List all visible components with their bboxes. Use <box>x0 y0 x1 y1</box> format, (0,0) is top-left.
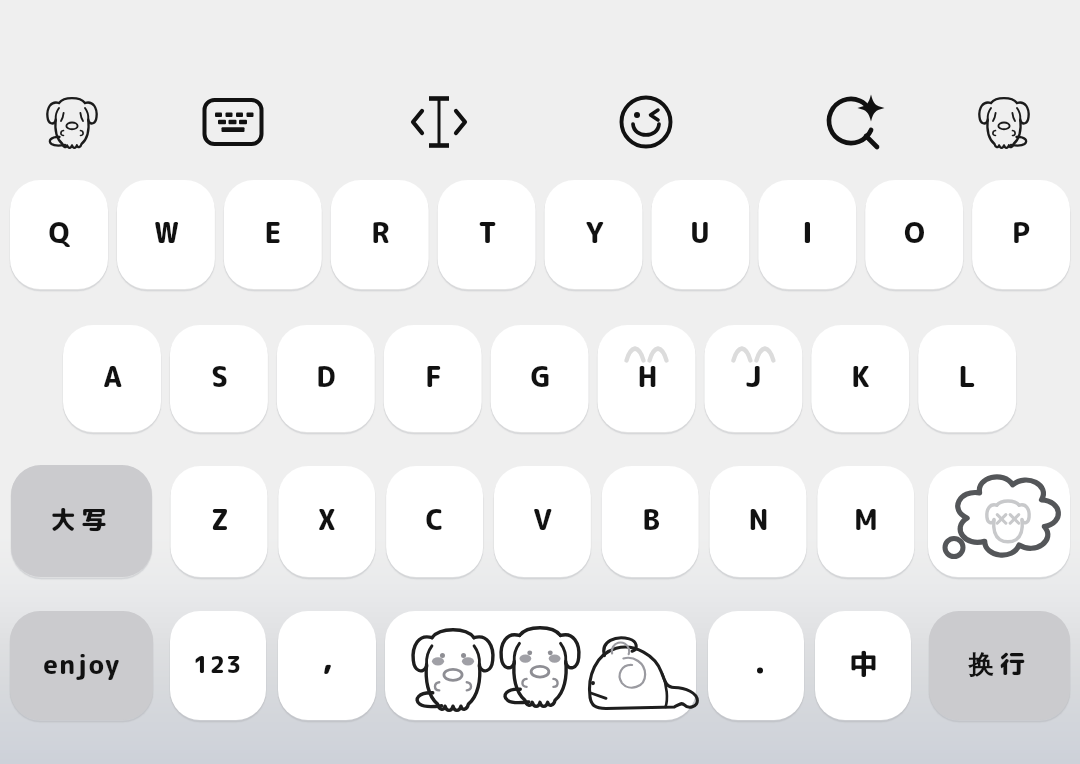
button[interactable]: S <box>170 325 268 432</box>
staticText: B <box>642 500 660 539</box>
button[interactable]: L <box>918 325 1016 432</box>
button[interactable]: Q <box>10 180 108 289</box>
button[interactable]: C <box>386 466 483 577</box>
staticText: 大写 <box>50 502 113 537</box>
button[interactable]: Emoji <box>610 86 682 158</box>
button[interactable]: F <box>384 325 482 432</box>
button[interactable]: Backspace <box>928 466 1070 577</box>
button[interactable]: Stickers <box>37 87 109 159</box>
staticText: T <box>478 213 497 252</box>
button[interactable]: H <box>598 325 696 432</box>
button[interactable]: K <box>811 325 909 432</box>
button[interactable]: enjoy <box>10 611 153 720</box>
staticText: Z <box>211 500 229 539</box>
staticText: C <box>425 500 444 539</box>
button[interactable]: J <box>704 325 802 432</box>
button[interactable]: E <box>224 180 322 289</box>
staticText: J <box>745 357 762 396</box>
staticText: 中 <box>849 644 878 683</box>
button[interactable]: U <box>651 180 749 289</box>
staticText: N <box>748 500 769 539</box>
button[interactable]: X <box>278 466 375 577</box>
staticText: Q <box>48 213 70 252</box>
button[interactable]: A <box>63 325 161 432</box>
button[interactable]: O <box>865 180 963 289</box>
button[interactable]: Z <box>171 466 268 577</box>
button[interactable]: Move cursor <box>403 86 475 158</box>
staticText: V <box>533 500 552 539</box>
button[interactable]: B <box>602 466 699 577</box>
staticText: L <box>958 357 976 396</box>
staticText: I <box>802 213 813 252</box>
staticText: P <box>1012 213 1030 252</box>
button[interactable]: Shift <box>11 465 152 577</box>
button[interactable]: Keyboard layout <box>197 86 269 158</box>
button[interactable]: Enter <box>929 611 1070 720</box>
button[interactable]: G <box>491 325 589 432</box>
staticText: X <box>317 500 336 539</box>
staticText: W <box>154 213 179 252</box>
staticText: F <box>425 357 442 396</box>
staticText: Y <box>585 213 604 252</box>
staticText: E <box>264 213 282 252</box>
button[interactable]: W <box>117 180 215 289</box>
button[interactable]: T <box>438 180 536 289</box>
button[interactable]: V <box>494 466 591 577</box>
staticText: S <box>211 357 228 396</box>
button[interactable]: AI search <box>815 85 887 157</box>
button[interactable]: R <box>331 180 429 289</box>
staticText: D <box>316 357 336 396</box>
staticText: M <box>854 500 878 539</box>
staticText: K <box>851 357 870 396</box>
button[interactable]: Chinese input <box>815 611 911 720</box>
button[interactable]: D <box>277 325 375 432</box>
staticText: U <box>690 213 710 252</box>
staticText: G <box>530 357 551 396</box>
button[interactable]: P <box>972 180 1070 289</box>
button[interactable]: Space <box>385 611 696 720</box>
staticText: 123 <box>193 648 243 680</box>
button[interactable]: N <box>710 466 807 577</box>
staticText: enjoy <box>43 646 121 682</box>
button[interactable]: M <box>817 466 914 577</box>
button[interactable]: Y <box>545 180 643 289</box>
button[interactable]: 123 <box>170 611 266 720</box>
staticText: H <box>637 357 658 396</box>
staticText: 换行 <box>968 646 1031 681</box>
staticText: O <box>904 213 925 252</box>
staticText: A <box>103 357 122 396</box>
button[interactable]: Period <box>708 611 804 720</box>
button[interactable]: Theme <box>968 87 1040 159</box>
button[interactable]: , <box>278 611 376 720</box>
staticText: , <box>322 639 333 681</box>
staticText: R <box>371 213 390 252</box>
button[interactable]: I <box>758 180 856 289</box>
